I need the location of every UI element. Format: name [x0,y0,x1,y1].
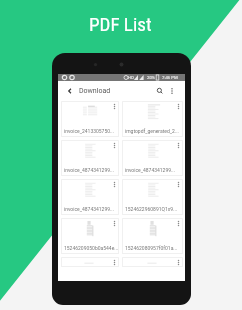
button[interactable]: Item options [109,101,119,111]
button[interactable]: Item options [173,257,183,267]
button[interactable]: Item options [122,179,183,215]
button[interactable]: Search [152,81,168,101]
button[interactable]: Item options [109,257,119,267]
button[interactable]: Item options [109,179,119,189]
button[interactable]: Item options [61,179,119,215]
staticText: imgtopdf_generated_2... [125,128,179,134]
button[interactable]: Item options [122,101,183,137]
button[interactable]: Item options [122,218,183,254]
staticText: invoice_4874341299... [64,167,115,173]
button[interactable]: Item options [61,140,119,176]
staticText: PDF List [89,13,152,35]
button[interactable]: Item options [109,218,119,228]
button[interactable]: Back [63,81,77,101]
button[interactable]: Item options [173,179,183,189]
staticText: 7:46 PM [162,75,178,80]
button[interactable]: Item options [122,140,183,176]
button[interactable]: Item options [173,140,183,150]
staticText: 20% [147,75,155,80]
staticText: Download [79,87,111,95]
staticText: invoice_4874341299... [125,167,176,173]
button[interactable]: Item options [61,101,119,137]
staticText: 15246209050b0a544e... [64,245,119,251]
staticText: invoice_4874341299... [64,206,115,212]
button[interactable]: Item options [61,257,119,267]
button[interactable]: Item options [61,218,119,254]
staticText: invoice_2413305750... [64,128,115,134]
button[interactable]: Item options [109,140,119,150]
button[interactable]: More options [165,81,179,101]
staticText: HD [128,75,134,80]
button[interactable]: Item options [173,101,183,111]
staticText: 152462080957f0f01a... [125,245,178,251]
button[interactable]: Item options [122,257,183,267]
button[interactable]: Item options [173,218,183,228]
staticText: 1524622960891Q1x9... [125,206,178,212]
